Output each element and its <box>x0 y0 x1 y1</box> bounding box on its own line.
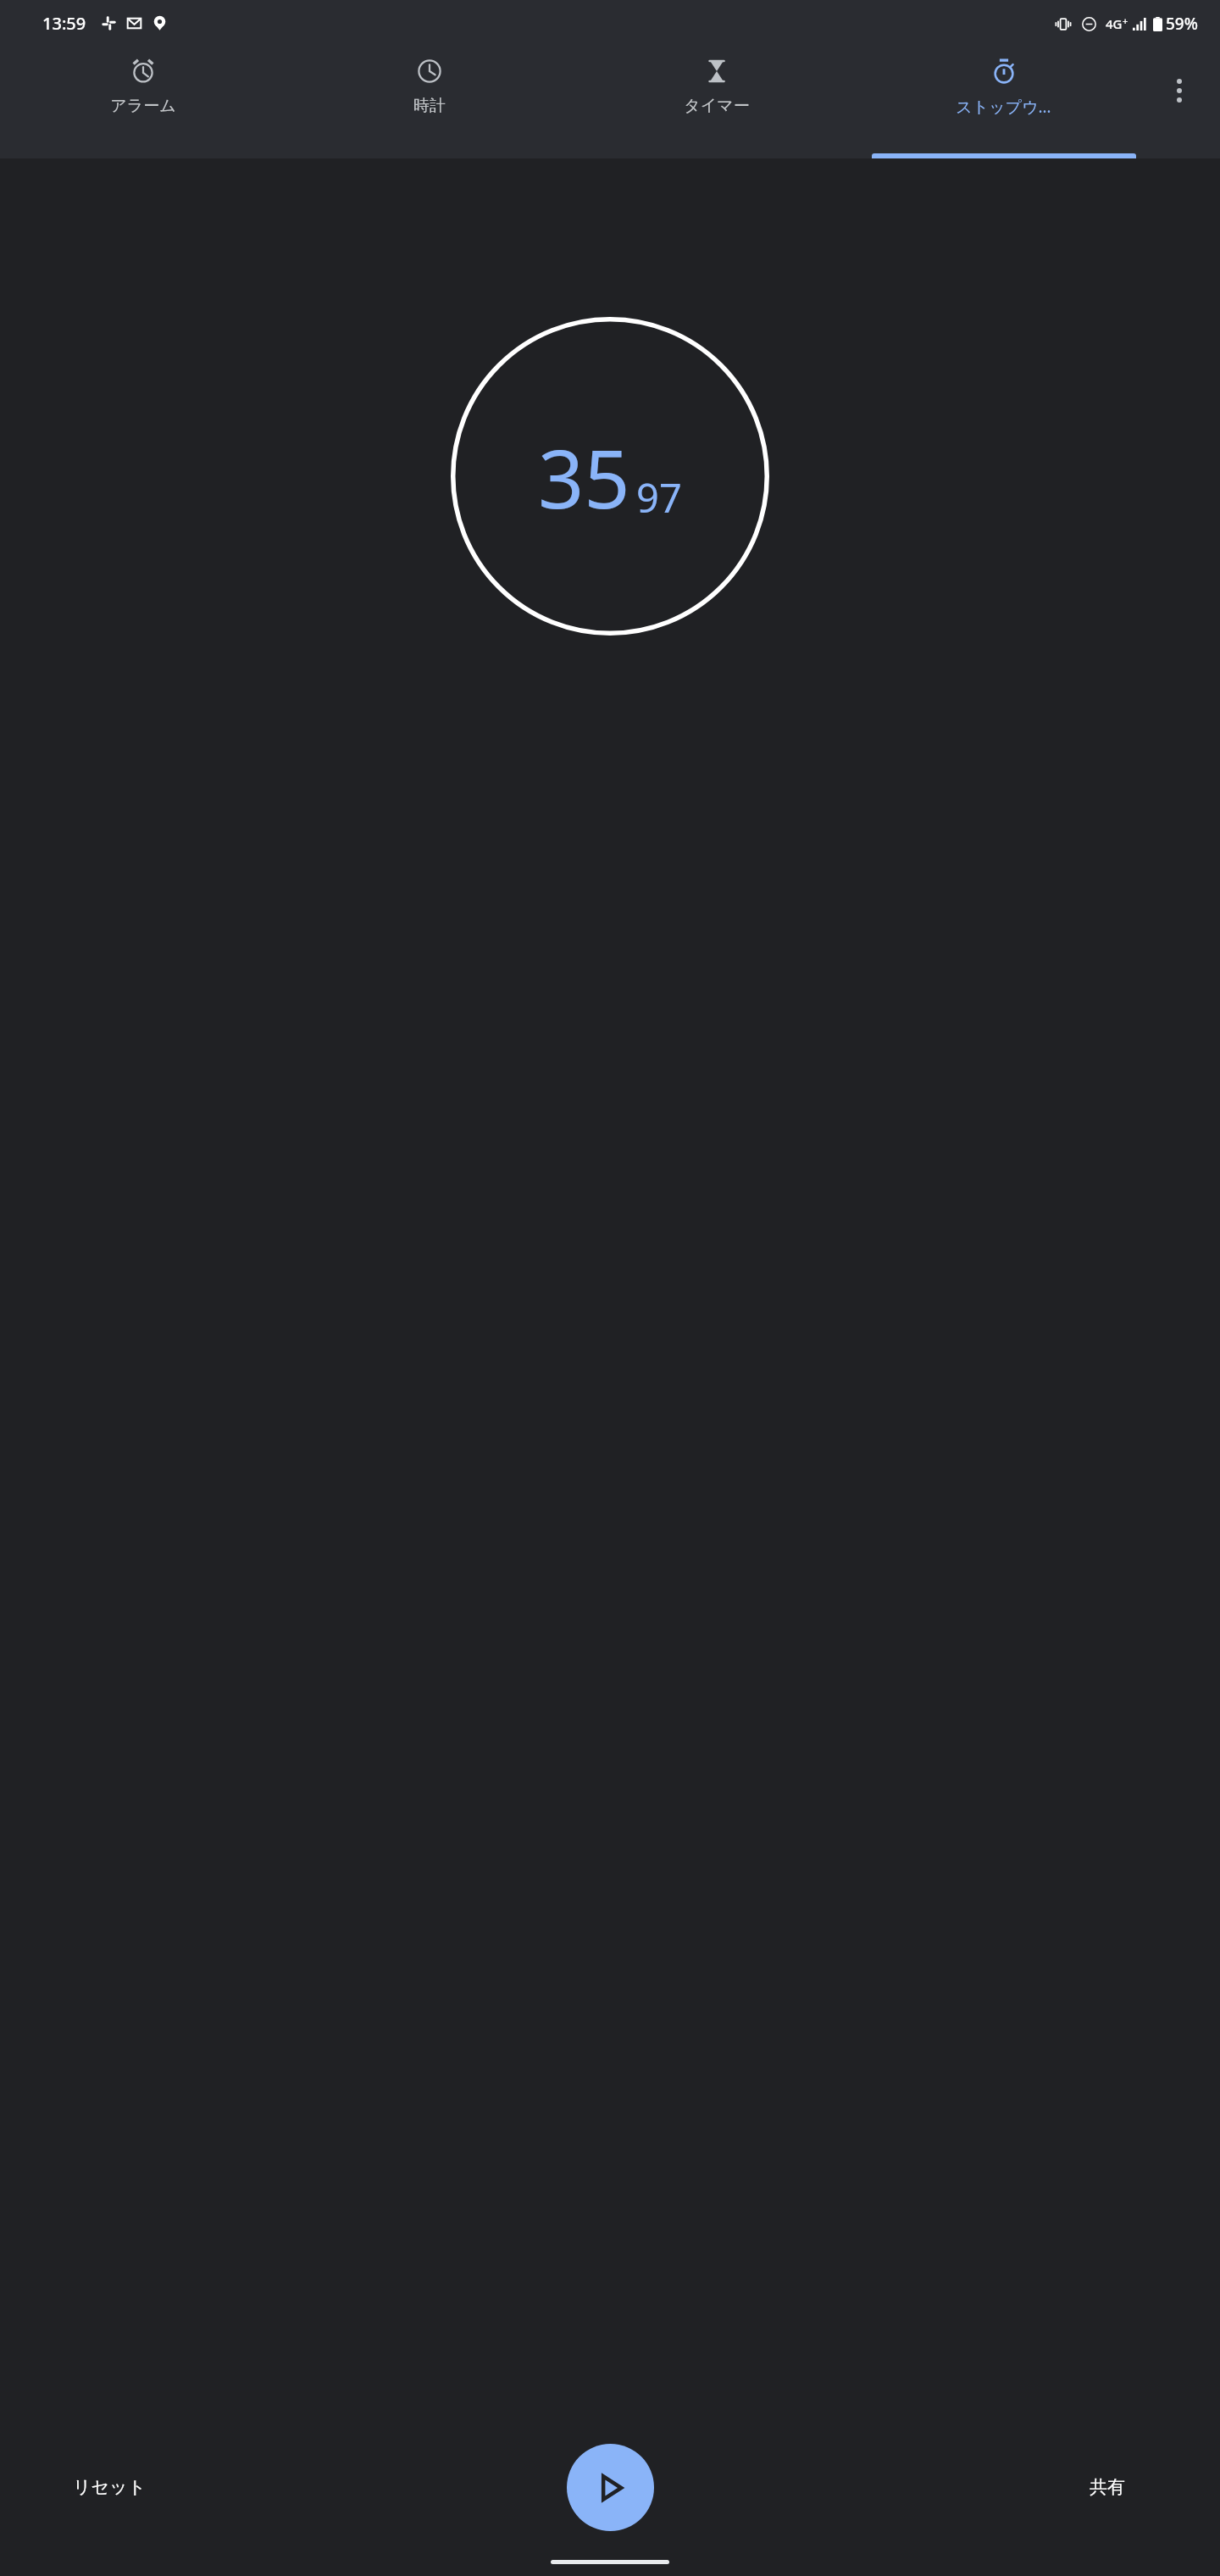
staticText: 13:59 <box>42 12 86 35</box>
staticText: 59% <box>1166 13 1198 35</box>
staticText: 共有 <box>1090 2476 1125 2498</box>
button[interactable]: 時計 <box>286 47 573 158</box>
staticText: 97 <box>636 470 682 525</box>
staticText: + <box>1123 14 1128 27</box>
button[interactable]: タイマー <box>573 47 860 158</box>
staticText: 時計 <box>413 96 446 116</box>
staticText: 35 <box>538 422 630 531</box>
button[interactable]: アラーム <box>0 47 286 158</box>
staticText: ストップウ… <box>956 96 1051 118</box>
staticText: タイマー <box>684 96 750 116</box>
button[interactable]: 共有 <box>1067 2464 1147 2510</box>
button[interactable]: More options <box>1156 67 1203 114</box>
staticText: リセット <box>73 2476 146 2498</box>
staticText: アラーム <box>110 96 176 116</box>
button[interactable]: Start <box>567 2444 654 2531</box>
staticText: 4G <box>1106 15 1123 32</box>
button[interactable]: ストップウ… <box>860 47 1147 158</box>
button[interactable]: リセット <box>51 2464 168 2510</box>
